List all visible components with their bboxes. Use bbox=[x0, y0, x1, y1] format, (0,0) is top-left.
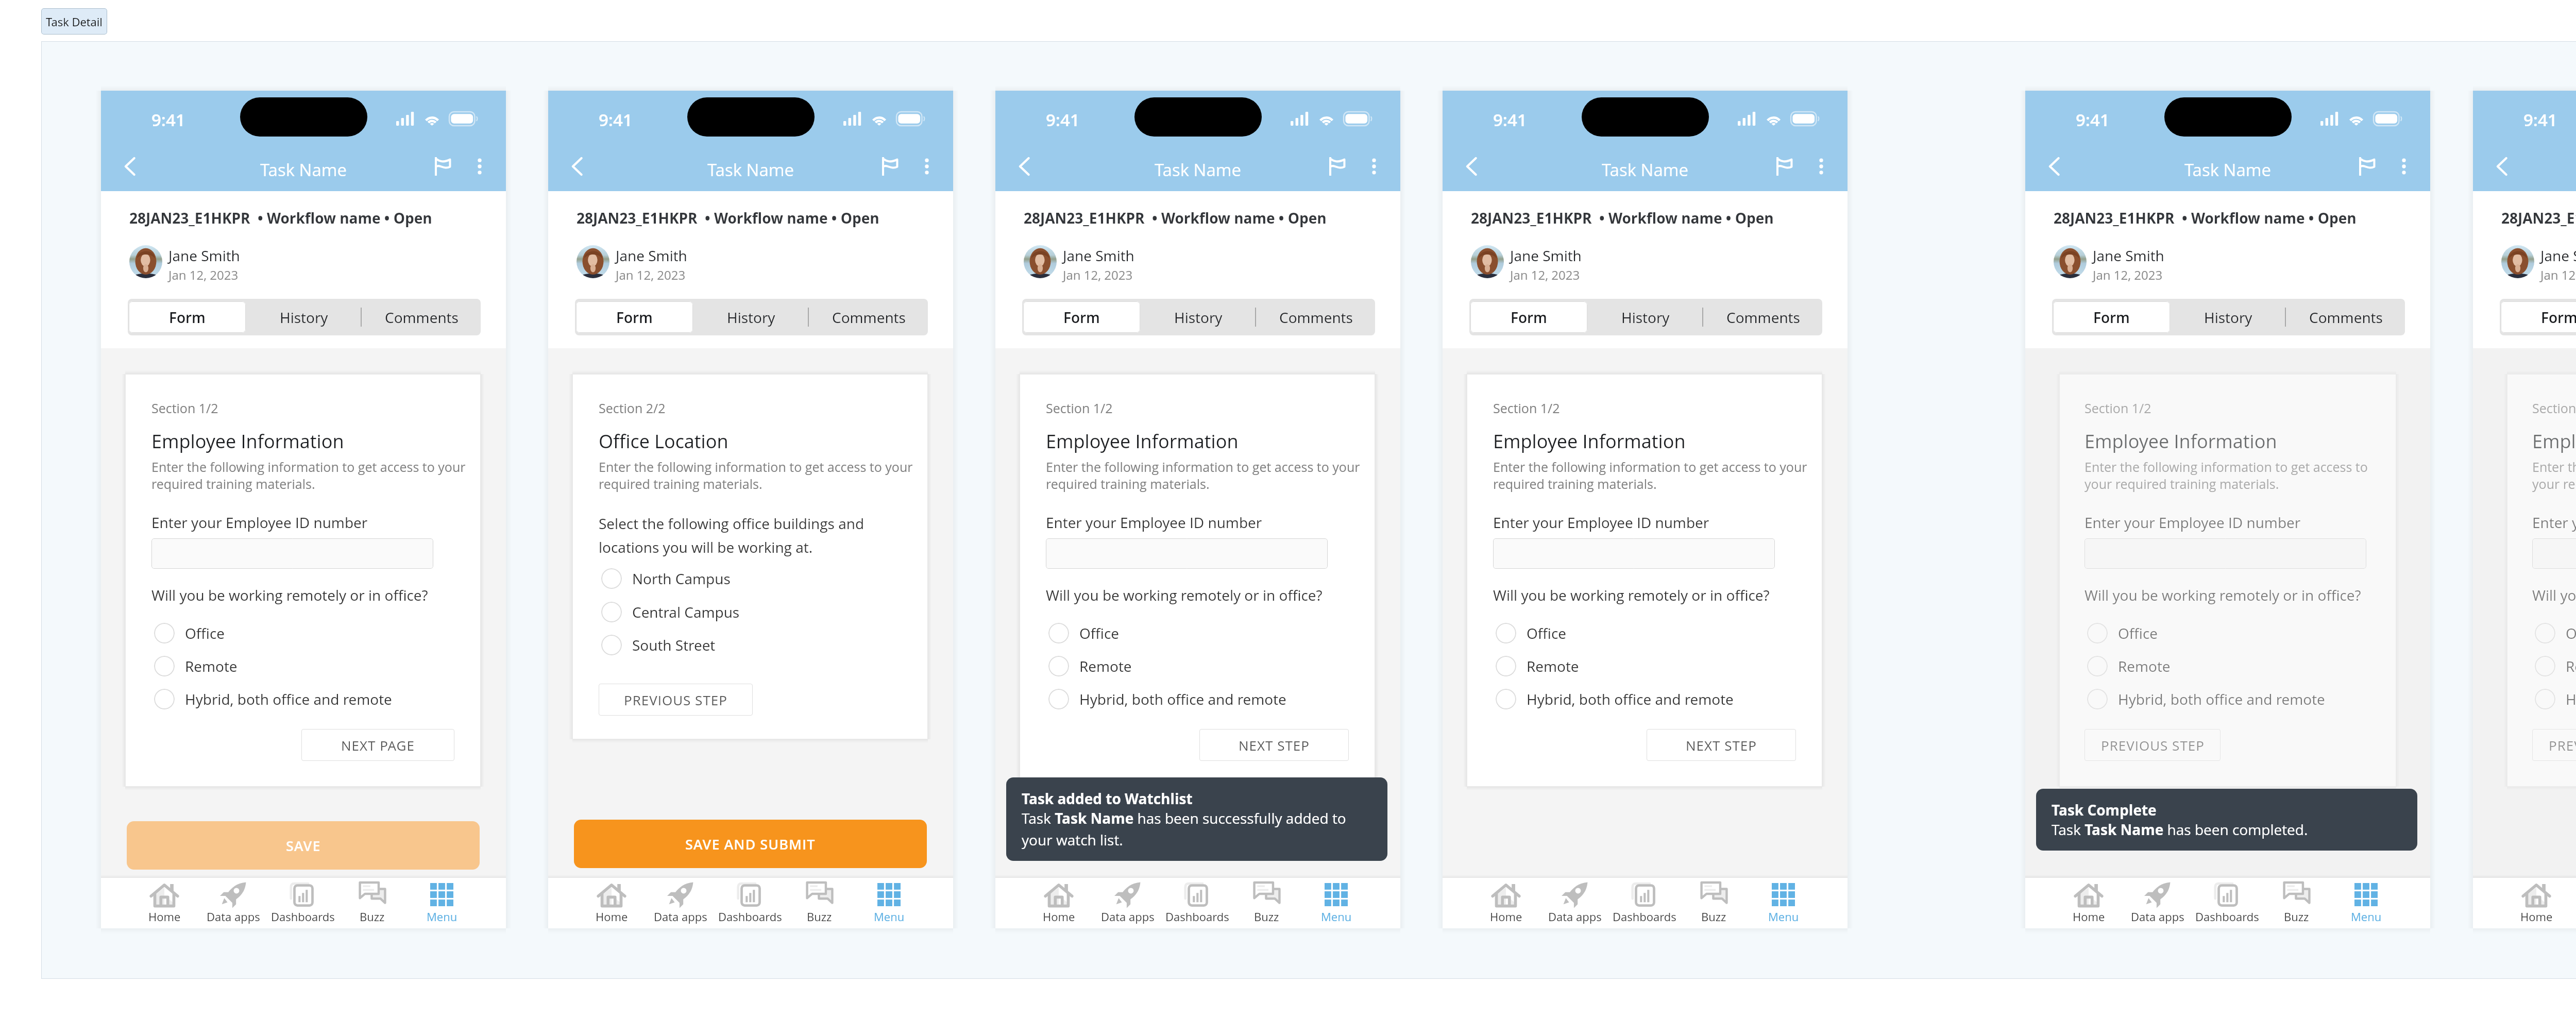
button[interactable]: Buzz bbox=[337, 878, 407, 928]
button[interactable]: Back bbox=[114, 150, 146, 182]
button[interactable]: SAVE bbox=[127, 821, 480, 870]
staticText: Office bbox=[2566, 623, 2576, 643]
button[interactable]: Menu bbox=[854, 878, 924, 928]
staticText: Office Location bbox=[599, 429, 728, 454]
button[interactable]: Remote bbox=[1046, 651, 1132, 681]
button[interactable]: Home bbox=[130, 878, 199, 928]
button[interactable]: Hybrid, both office and remote bbox=[1493, 684, 1734, 714]
staticText: Home bbox=[148, 909, 181, 924]
button[interactable]: Employee ID number field bbox=[2532, 538, 2576, 569]
button[interactable]: Home bbox=[1471, 878, 1540, 928]
button[interactable]: Flag task bbox=[2351, 150, 2383, 182]
button[interactable]: History bbox=[245, 299, 363, 335]
staticText: History bbox=[1621, 308, 1670, 327]
button[interactable]: Dashboards bbox=[268, 878, 337, 928]
button[interactable]: More options bbox=[1358, 150, 1390, 182]
button[interactable]: Buzz bbox=[1232, 878, 1301, 928]
button[interactable]: Menu bbox=[1749, 878, 1818, 928]
button[interactable]: Remote bbox=[151, 651, 238, 681]
button[interactable]: Employee ID number field bbox=[151, 538, 433, 569]
button[interactable]: Remote bbox=[1493, 651, 1579, 681]
button[interactable]: Data apps bbox=[1540, 878, 1609, 928]
button[interactable]: Hybrid, both office and remote bbox=[2532, 684, 2576, 714]
button[interactable]: Data apps bbox=[2123, 878, 2192, 928]
button[interactable]: Form bbox=[576, 301, 693, 333]
button[interactable]: Comments bbox=[363, 299, 481, 335]
button[interactable]: Office bbox=[1046, 618, 1119, 648]
button[interactable]: NEXT PAGE bbox=[301, 729, 454, 761]
staticText: Task Name bbox=[2025, 158, 2430, 181]
button[interactable]: Office bbox=[2084, 618, 2158, 648]
button[interactable]: PREVIOUS STEP bbox=[2084, 729, 2221, 761]
staticText: Hybrid, both office and remote bbox=[1079, 689, 1286, 709]
button[interactable]: Task Detail bbox=[41, 8, 107, 35]
staticText: NEXT STEP bbox=[1686, 736, 1757, 754]
button[interactable]: Data apps bbox=[199, 878, 268, 928]
button[interactable]: More options bbox=[1805, 150, 1837, 182]
button[interactable]: Back bbox=[1456, 150, 1488, 182]
button[interactable]: Form bbox=[1470, 301, 1587, 333]
button[interactable]: History bbox=[2169, 299, 2287, 335]
button[interactable]: History bbox=[1586, 299, 1704, 335]
button[interactable]: Dashboards bbox=[2192, 878, 2262, 928]
button[interactable]: Office bbox=[1493, 618, 1566, 648]
button[interactable]: PREVIOUS STEP bbox=[599, 684, 753, 716]
button[interactable]: Remote bbox=[2084, 651, 2171, 681]
button[interactable]: Back bbox=[2039, 150, 2071, 182]
button[interactable]: Dashboards bbox=[715, 878, 785, 928]
button[interactable]: Comments bbox=[810, 299, 928, 335]
button[interactable]: Menu bbox=[2331, 878, 2401, 928]
button[interactable]: More options bbox=[911, 150, 943, 182]
button[interactable]: Flag task bbox=[874, 150, 906, 182]
button[interactable]: History bbox=[692, 299, 810, 335]
button[interactable]: Form bbox=[2053, 301, 2170, 333]
button[interactable]: Comments bbox=[2287, 299, 2405, 335]
button[interactable]: Employee ID number field bbox=[2084, 538, 2366, 569]
button[interactable]: Data apps bbox=[1093, 878, 1162, 928]
button[interactable]: Home bbox=[2054, 878, 2123, 928]
button[interactable]: Menu bbox=[407, 878, 477, 928]
button[interactable]: Form bbox=[1023, 301, 1140, 333]
button[interactable]: Buzz bbox=[785, 878, 854, 928]
button[interactable]: North Campus bbox=[599, 564, 731, 593]
button[interactable]: Employee ID number field bbox=[1493, 538, 1775, 569]
button[interactable]: Buzz bbox=[1679, 878, 1749, 928]
button[interactable]: Flag task bbox=[1768, 150, 1800, 182]
button[interactable]: Home bbox=[577, 878, 646, 928]
button[interactable]: Dashboards bbox=[1162, 878, 1232, 928]
button[interactable]: Employee ID number field bbox=[1046, 538, 1328, 569]
button[interactable]: Home bbox=[1024, 878, 1093, 928]
button[interactable]: Office bbox=[151, 618, 225, 648]
button[interactable]: Form bbox=[129, 301, 246, 333]
button[interactable]: Back bbox=[1009, 150, 1041, 182]
button[interactable]: South Street bbox=[599, 630, 716, 660]
staticText: Comments bbox=[1726, 308, 1800, 327]
button[interactable]: Comments bbox=[1704, 299, 1822, 335]
button[interactable]: More options bbox=[2388, 150, 2420, 182]
button[interactable]: Dashboards bbox=[1609, 878, 1679, 928]
button[interactable]: Remote bbox=[2532, 651, 2576, 681]
button[interactable]: Office bbox=[2532, 618, 2576, 648]
button[interactable]: NEXT STEP bbox=[1647, 729, 1796, 761]
button[interactable]: Hybrid, both office and remote bbox=[1046, 684, 1286, 714]
button[interactable]: Central Campus bbox=[599, 597, 740, 627]
button[interactable]: SAVE AND SUBMIT bbox=[574, 820, 927, 868]
button[interactable]: Menu bbox=[1301, 878, 1371, 928]
button[interactable]: Flag task bbox=[1321, 150, 1353, 182]
button[interactable]: PREVIOUS STEP bbox=[2532, 729, 2576, 761]
button[interactable]: Back bbox=[2486, 150, 2518, 182]
button[interactable]: Form bbox=[2501, 301, 2576, 333]
button[interactable]: Comments bbox=[1257, 299, 1375, 335]
button[interactable]: History bbox=[1139, 299, 1257, 335]
button[interactable]: Home bbox=[2502, 878, 2571, 928]
staticText: Task Name bbox=[2473, 158, 2576, 181]
button[interactable]: Back bbox=[562, 150, 594, 182]
button[interactable]: Hybrid, both office and remote bbox=[2084, 684, 2325, 714]
button[interactable]: Buzz bbox=[2262, 878, 2331, 928]
button[interactable]: NEXT STEP bbox=[1199, 729, 1349, 761]
button[interactable]: Flag task bbox=[427, 150, 459, 182]
button[interactable]: Data apps bbox=[646, 878, 715, 928]
button[interactable]: Hybrid, both office and remote bbox=[151, 684, 392, 714]
button[interactable]: More options bbox=[464, 150, 496, 182]
